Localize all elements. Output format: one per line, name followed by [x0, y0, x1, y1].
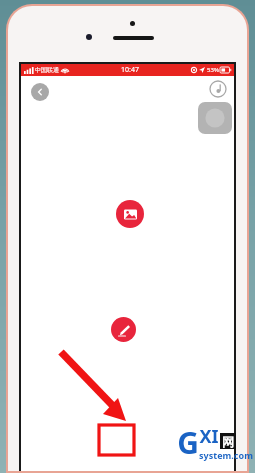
button[interactable]: Music	[209, 80, 227, 98]
button[interactable]: Preview thumbnail	[198, 102, 232, 134]
button[interactable]: Add image	[116, 200, 144, 228]
staticText: 网	[222, 434, 234, 449]
staticText: 中国联通	[35, 66, 59, 74]
staticText: XI	[199, 424, 219, 449]
staticText: G	[177, 422, 199, 463]
staticText: 53%	[207, 66, 219, 74]
button[interactable]: Edit	[111, 317, 136, 342]
staticText: system.com	[199, 449, 253, 461]
button[interactable]: Back	[31, 83, 49, 101]
staticText: 10:47	[121, 65, 139, 75]
